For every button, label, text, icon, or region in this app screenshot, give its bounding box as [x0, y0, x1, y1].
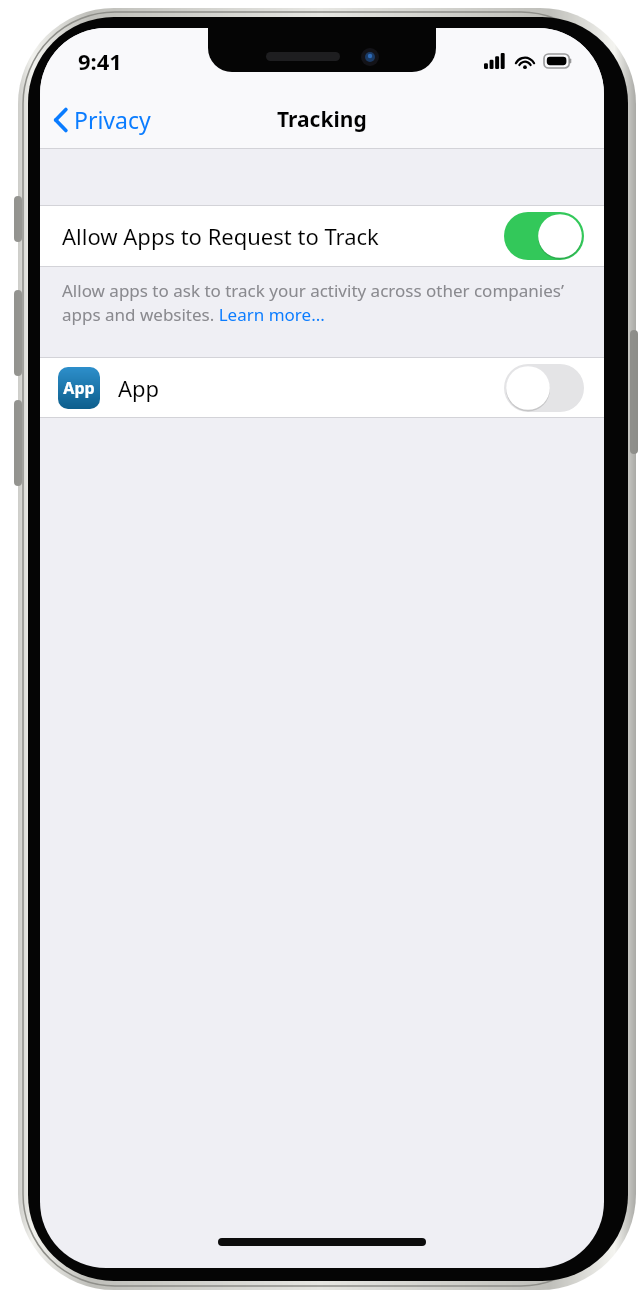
- button[interactable]: Privacy: [40, 98, 161, 141]
- staticText: Tracking: [277, 105, 367, 134]
- staticText: Allow apps to ask to track your activity…: [62, 279, 582, 326]
- staticText: App: [63, 377, 95, 399]
- button[interactable]: App: [40, 358, 604, 417]
- staticText: App: [118, 373, 160, 403]
- button[interactable]: Toggle off: [504, 364, 584, 412]
- staticText: Privacy: [74, 104, 151, 135]
- button[interactable]: Allow Apps to Request to Track: [40, 206, 604, 266]
- button[interactable]: Toggle on: [504, 212, 584, 260]
- staticText: Allow Apps to Request to Track: [62, 221, 379, 251]
- staticText: 9:41: [78, 46, 122, 76]
